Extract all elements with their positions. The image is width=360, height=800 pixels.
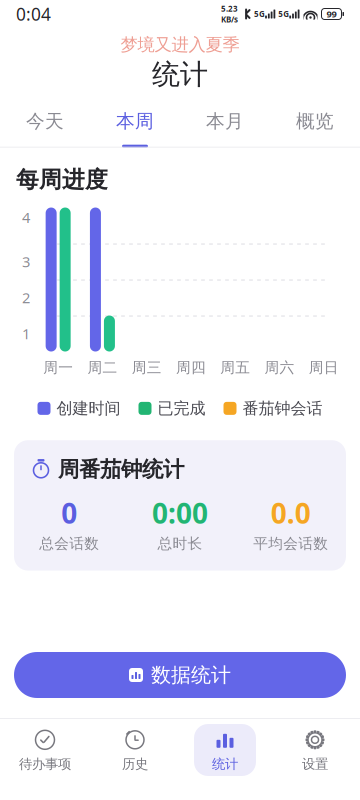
staticText: 梦境又进入夏季 (120, 34, 239, 55)
staticText: 统计 (152, 57, 208, 92)
staticText: 历史 (122, 756, 148, 772)
staticText: 本周 (116, 110, 154, 133)
staticText: 周五 (220, 358, 250, 376)
staticText: 周三 (132, 358, 162, 376)
staticText: 每周进度 (16, 166, 108, 193)
staticText: 4 (22, 207, 30, 227)
staticText: 3 (22, 252, 30, 271)
button[interactable]: 数据统计 (14, 652, 346, 698)
staticText: 5G (278, 9, 289, 19)
staticText: 周四 (176, 358, 206, 376)
staticText: 周一 (43, 358, 73, 376)
button[interactable]: 本周 (90, 104, 180, 148)
staticText: 平均会话数 (253, 535, 328, 553)
staticText: 概览 (296, 110, 334, 133)
staticText: 5G (254, 9, 265, 19)
staticText: 设置 (302, 756, 328, 772)
button[interactable]: 统计 (180, 724, 270, 776)
button[interactable]: 设置 (270, 724, 360, 776)
staticText: 创建时间 (56, 398, 120, 418)
staticText: 总时长 (157, 535, 202, 553)
staticText: 已完成 (157, 398, 205, 418)
staticText: 5.23 (221, 3, 238, 14)
staticText: 本月 (206, 110, 244, 133)
staticText: 数据统计 (151, 663, 231, 687)
staticText: 99 (326, 8, 336, 20)
staticText: 周二 (87, 358, 117, 376)
staticText: 番茄钟会话 (242, 398, 322, 418)
staticText: 周日 (309, 358, 339, 376)
staticText: KB/s (221, 14, 238, 25)
staticText: 0.0 (271, 494, 311, 532)
staticText: 周六 (265, 358, 295, 376)
staticText: 今天 (26, 110, 64, 133)
staticText: 总会话数 (39, 535, 99, 553)
button[interactable]: 今天 (0, 104, 90, 148)
button[interactable]: 概览 (270, 104, 360, 148)
staticText: 统计 (212, 756, 238, 772)
staticText: 周番茄钟统计 (58, 456, 184, 482)
staticText: 待办事项 (19, 756, 71, 772)
button[interactable]: 历史 (90, 724, 180, 776)
staticText: 0 (61, 494, 77, 532)
staticText: 0:00 (152, 494, 208, 532)
button[interactable]: 待办事项 (0, 724, 90, 776)
staticText: 1 (22, 324, 30, 343)
staticText: 0:04 (16, 2, 51, 25)
button[interactable]: 本月 (180, 104, 270, 148)
staticText: 2 (22, 288, 30, 307)
